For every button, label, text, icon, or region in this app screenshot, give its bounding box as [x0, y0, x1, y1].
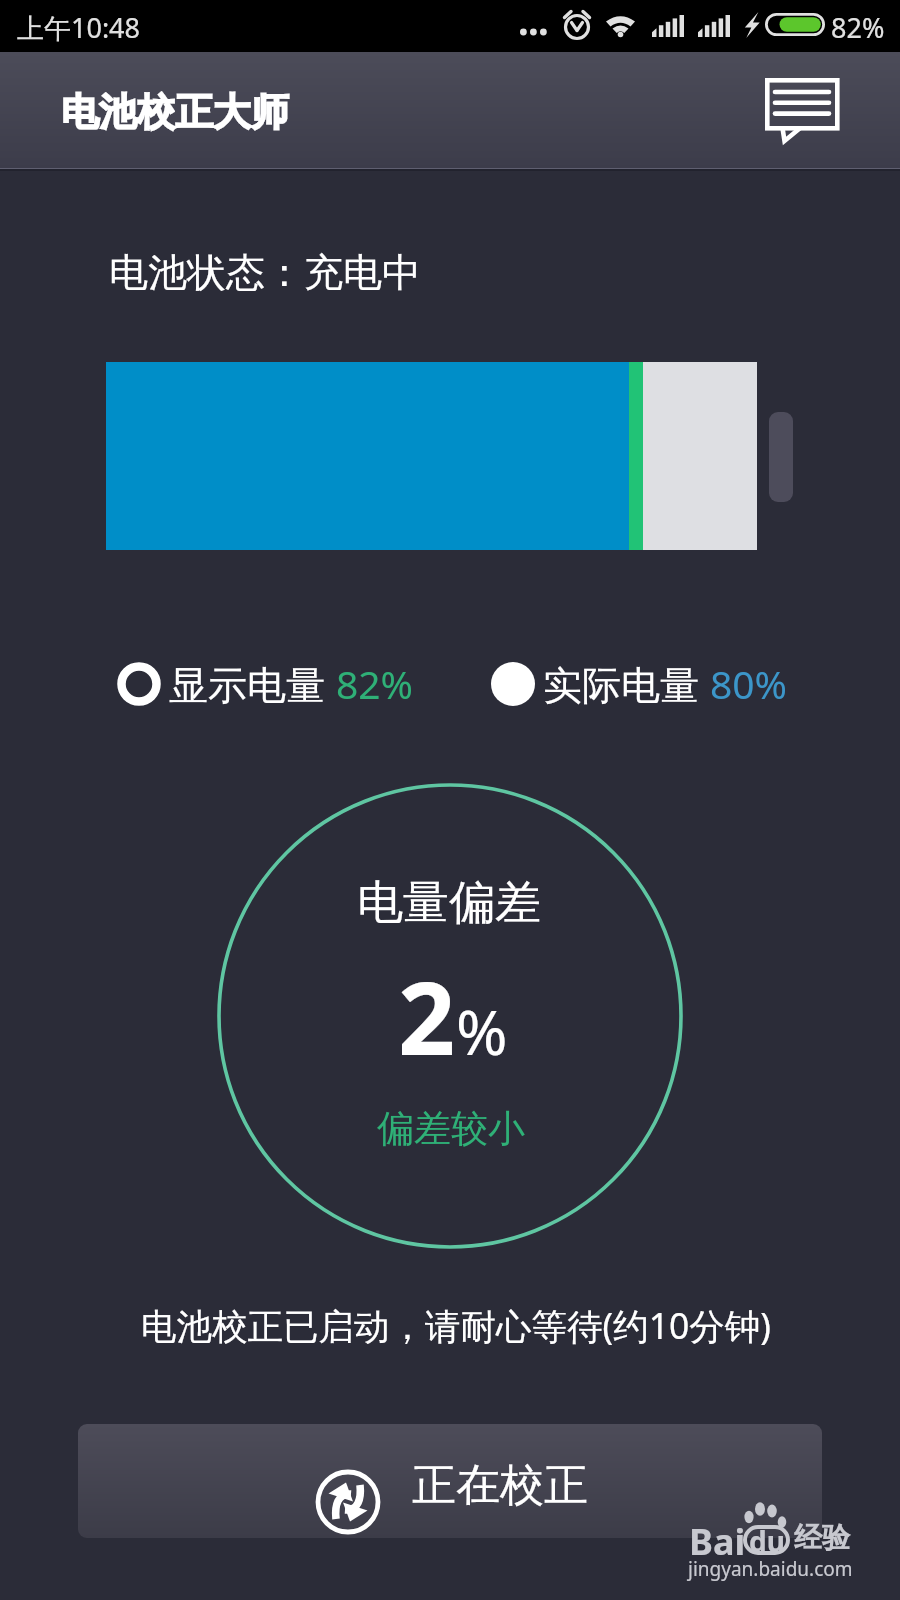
- staticText: %: [456, 989, 508, 1073]
- staticText: 偏差较小: [377, 1105, 525, 1152]
- staticText: 82%: [336, 657, 414, 710]
- staticText: 2: [398, 948, 456, 1084]
- staticText: jingyan.baidu.com: [688, 1556, 853, 1582]
- button[interactable]: Feedback: [740, 54, 860, 160]
- staticText: 显示电量: [169, 657, 336, 710]
- button[interactable]: 正在校正: [78, 1424, 822, 1538]
- staticText: 上午10:48: [17, 9, 141, 46]
- staticText: 电量偏差: [357, 874, 541, 932]
- staticText: 经验: [794, 1520, 850, 1555]
- staticText: 正在校正: [412, 1458, 588, 1513]
- staticText: 电池校正已启动，请耐心等待(约10分钟): [6, 1301, 900, 1349]
- staticText: du: [749, 1522, 785, 1560]
- staticText: 82%: [831, 9, 885, 46]
- staticText: Bai: [689, 1517, 746, 1566]
- staticText: 电池状态：充电中: [109, 248, 421, 297]
- staticText: 电池校正大师: [61, 88, 289, 136]
- staticText: 实际电量: [543, 657, 710, 710]
- staticText: 80%: [710, 657, 788, 710]
